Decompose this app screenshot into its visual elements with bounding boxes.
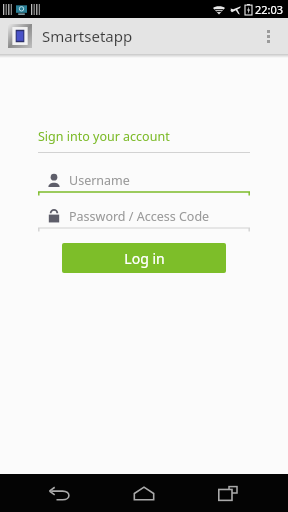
staticText: Sign into your account — [38, 128, 170, 145]
button[interactable]: Back — [36, 474, 84, 512]
button[interactable]: Log in — [62, 243, 226, 273]
staticText: Password / Access Code — [69, 208, 210, 225]
staticText: Smartsetapp — [42, 26, 133, 46]
staticText: Username — [69, 172, 130, 189]
button[interactable]: Home — [120, 474, 168, 512]
button[interactable]: Password / Access Code — [38, 205, 250, 231]
button[interactable]: More options — [250, 18, 286, 54]
button[interactable]: Recent apps — [204, 474, 252, 512]
button[interactable]: Username — [38, 169, 250, 195]
staticText: 22:03 — [255, 2, 284, 17]
staticText: Log in — [124, 249, 165, 268]
